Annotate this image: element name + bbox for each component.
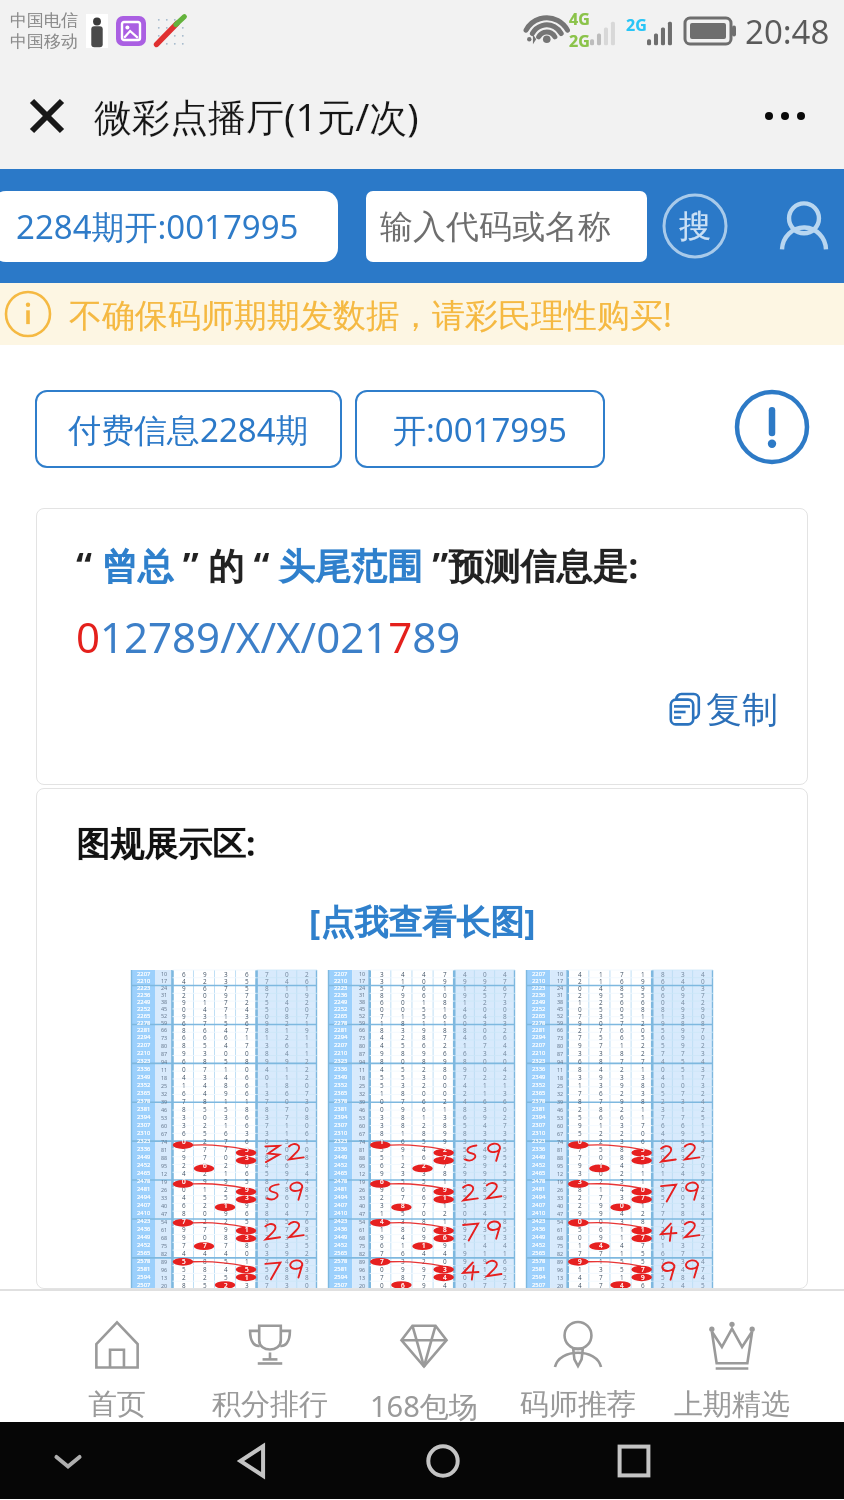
staticText: 0 — [620, 1201, 624, 1209]
button[interactable]: Home — [416, 1434, 470, 1488]
staticText: 3 — [203, 1049, 207, 1057]
staticText: 1 — [401, 1153, 405, 1161]
button[interactable]: 上期精选 — [655, 1291, 809, 1422]
staticText: 2410 — [137, 1209, 151, 1217]
staticText: 6 — [245, 1137, 249, 1145]
staticText: 8 — [224, 1081, 228, 1089]
button[interactable]: Search — [662, 193, 728, 259]
staticText: 0 — [265, 1012, 269, 1019]
staticText: 0 — [599, 1153, 603, 1161]
staticText: 0 — [483, 1065, 487, 1073]
staticText: 6 — [203, 984, 207, 991]
staticText: 2 — [463, 1089, 467, 1097]
staticText: 3 — [620, 1193, 624, 1201]
button[interactable]: 2284期开:0017995 — [0, 191, 338, 262]
staticText: 7 — [661, 1257, 665, 1265]
staticText: 9 — [599, 991, 603, 998]
staticText: 0 — [463, 1281, 467, 1289]
button[interactable]: Hide keyboard — [46, 1439, 90, 1483]
staticText: 1 — [443, 984, 447, 991]
staticText: 46 — [161, 1106, 168, 1113]
staticText: 1 — [599, 1121, 603, 1129]
button[interactable]: 积分排行 — [193, 1291, 347, 1422]
button[interactable]: Recents — [607, 1434, 661, 1488]
staticText: 0 — [285, 1145, 289, 1153]
staticText: 3 — [483, 1105, 487, 1113]
staticText: 1 — [245, 1273, 249, 1281]
staticText: 0 — [483, 1026, 487, 1033]
staticText: 2 — [641, 1041, 645, 1049]
staticText: 7 — [641, 1265, 645, 1273]
staticText: 7 — [265, 1281, 269, 1289]
staticText: 5 — [380, 984, 384, 991]
button[interactable]: 开:0017995 — [355, 390, 605, 468]
staticText: 2465 — [137, 1169, 151, 1177]
button[interactable]: 付费信息2284期 — [35, 390, 342, 468]
staticText: 1 — [661, 1012, 665, 1019]
button[interactable]: 首页 — [40, 1291, 193, 1422]
staticText: 0 — [285, 1005, 289, 1012]
button[interactable]: 输入代码或名称 — [366, 191, 647, 262]
staticText: 5 — [285, 1217, 289, 1225]
staticText: 5 — [401, 1065, 405, 1073]
staticText: 0 — [224, 1281, 228, 1289]
staticText: 图规展示区: — [76, 820, 256, 866]
staticText: 6 — [182, 970, 186, 977]
staticText: 0 — [380, 1265, 384, 1273]
staticText: 9 — [224, 991, 228, 998]
staticText: 12 — [161, 1170, 168, 1177]
staticText: 3 — [265, 1249, 269, 1257]
staticText: 5 — [620, 1257, 624, 1265]
staticText: 9 — [380, 1049, 384, 1057]
staticText: 8 — [463, 1153, 467, 1161]
staticText: 1 — [182, 1137, 186, 1145]
button[interactable]: 复制 — [666, 687, 778, 732]
staticText: 8 — [265, 984, 269, 991]
staticText: 6 — [620, 1033, 624, 1041]
staticText: 88 — [161, 1154, 168, 1161]
staticText: 2336 — [137, 1065, 151, 1073]
button[interactable]: Profile — [773, 195, 835, 257]
staticText: 1 — [620, 1281, 624, 1289]
staticText: 3 — [463, 1137, 467, 1145]
staticText: 7 — [224, 984, 228, 991]
staticText: 7 — [401, 984, 405, 991]
staticText: 1 — [681, 1105, 685, 1113]
staticText: 0 — [641, 1185, 645, 1193]
staticText: 2449 — [532, 1233, 546, 1241]
staticText: 1 — [224, 1012, 228, 1019]
staticText: 3 — [245, 1153, 249, 1161]
button[interactable]: Back — [226, 1434, 280, 1488]
staticText: 7 — [641, 1233, 645, 1241]
staticText: [点我查看长图] — [309, 898, 536, 944]
staticText: 3 — [681, 1225, 685, 1233]
button[interactable]: 码师推荐 — [501, 1291, 655, 1422]
staticText: 61 — [161, 1226, 168, 1233]
staticText: 9 — [463, 1065, 467, 1073]
staticText: 66 — [161, 1026, 168, 1033]
staticText: 4 — [224, 1249, 228, 1257]
staticText: 7 — [681, 1249, 685, 1257]
staticText: 2210 — [334, 977, 348, 984]
button[interactable]: More options — [730, 62, 840, 169]
staticText: 8 — [443, 1026, 447, 1033]
staticText: 4 — [701, 1273, 705, 1281]
staticText: 8 — [661, 1185, 665, 1193]
staticText: 5 — [265, 1169, 269, 1177]
button[interactable]: [点我查看长图] — [309, 898, 536, 944]
staticText: 5 — [182, 1257, 186, 1265]
staticText: 5 — [681, 1065, 685, 1073]
button[interactable]: Close — [0, 62, 94, 169]
button[interactable]: 168包场 — [347, 1291, 501, 1422]
staticText: 6 — [422, 1097, 426, 1105]
staticText: 7 — [620, 970, 624, 977]
staticText: 9 — [483, 1169, 487, 1177]
staticText: 19 — [557, 1178, 564, 1185]
staticText: 4 — [182, 1193, 186, 1201]
staticText: 5 — [245, 977, 249, 984]
button[interactable]: Info — [734, 389, 810, 465]
staticText: 54 — [161, 1218, 168, 1225]
staticText: 9 — [578, 1041, 582, 1049]
staticText: 9 — [245, 1145, 249, 1153]
staticText: 2 — [305, 1057, 309, 1065]
